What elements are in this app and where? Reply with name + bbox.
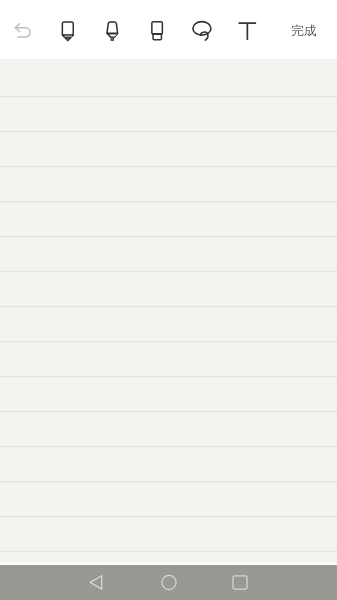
button[interactable]: Back: [79, 565, 113, 600]
button[interactable]: 完成: [281, 15, 326, 46]
button[interactable]: Text: [225, 8, 269, 52]
staticText: 完成: [291, 23, 317, 39]
button[interactable]: Recent apps: [223, 565, 257, 600]
button[interactable]: Pen: [46, 8, 90, 52]
button[interactable]: Home: [152, 565, 186, 600]
button[interactable]: Highlighter: [90, 8, 134, 52]
button[interactable]: Undo: [0, 8, 44, 52]
button[interactable]: Eraser: [135, 8, 179, 52]
button[interactable]: Lasso select: [180, 8, 224, 52]
